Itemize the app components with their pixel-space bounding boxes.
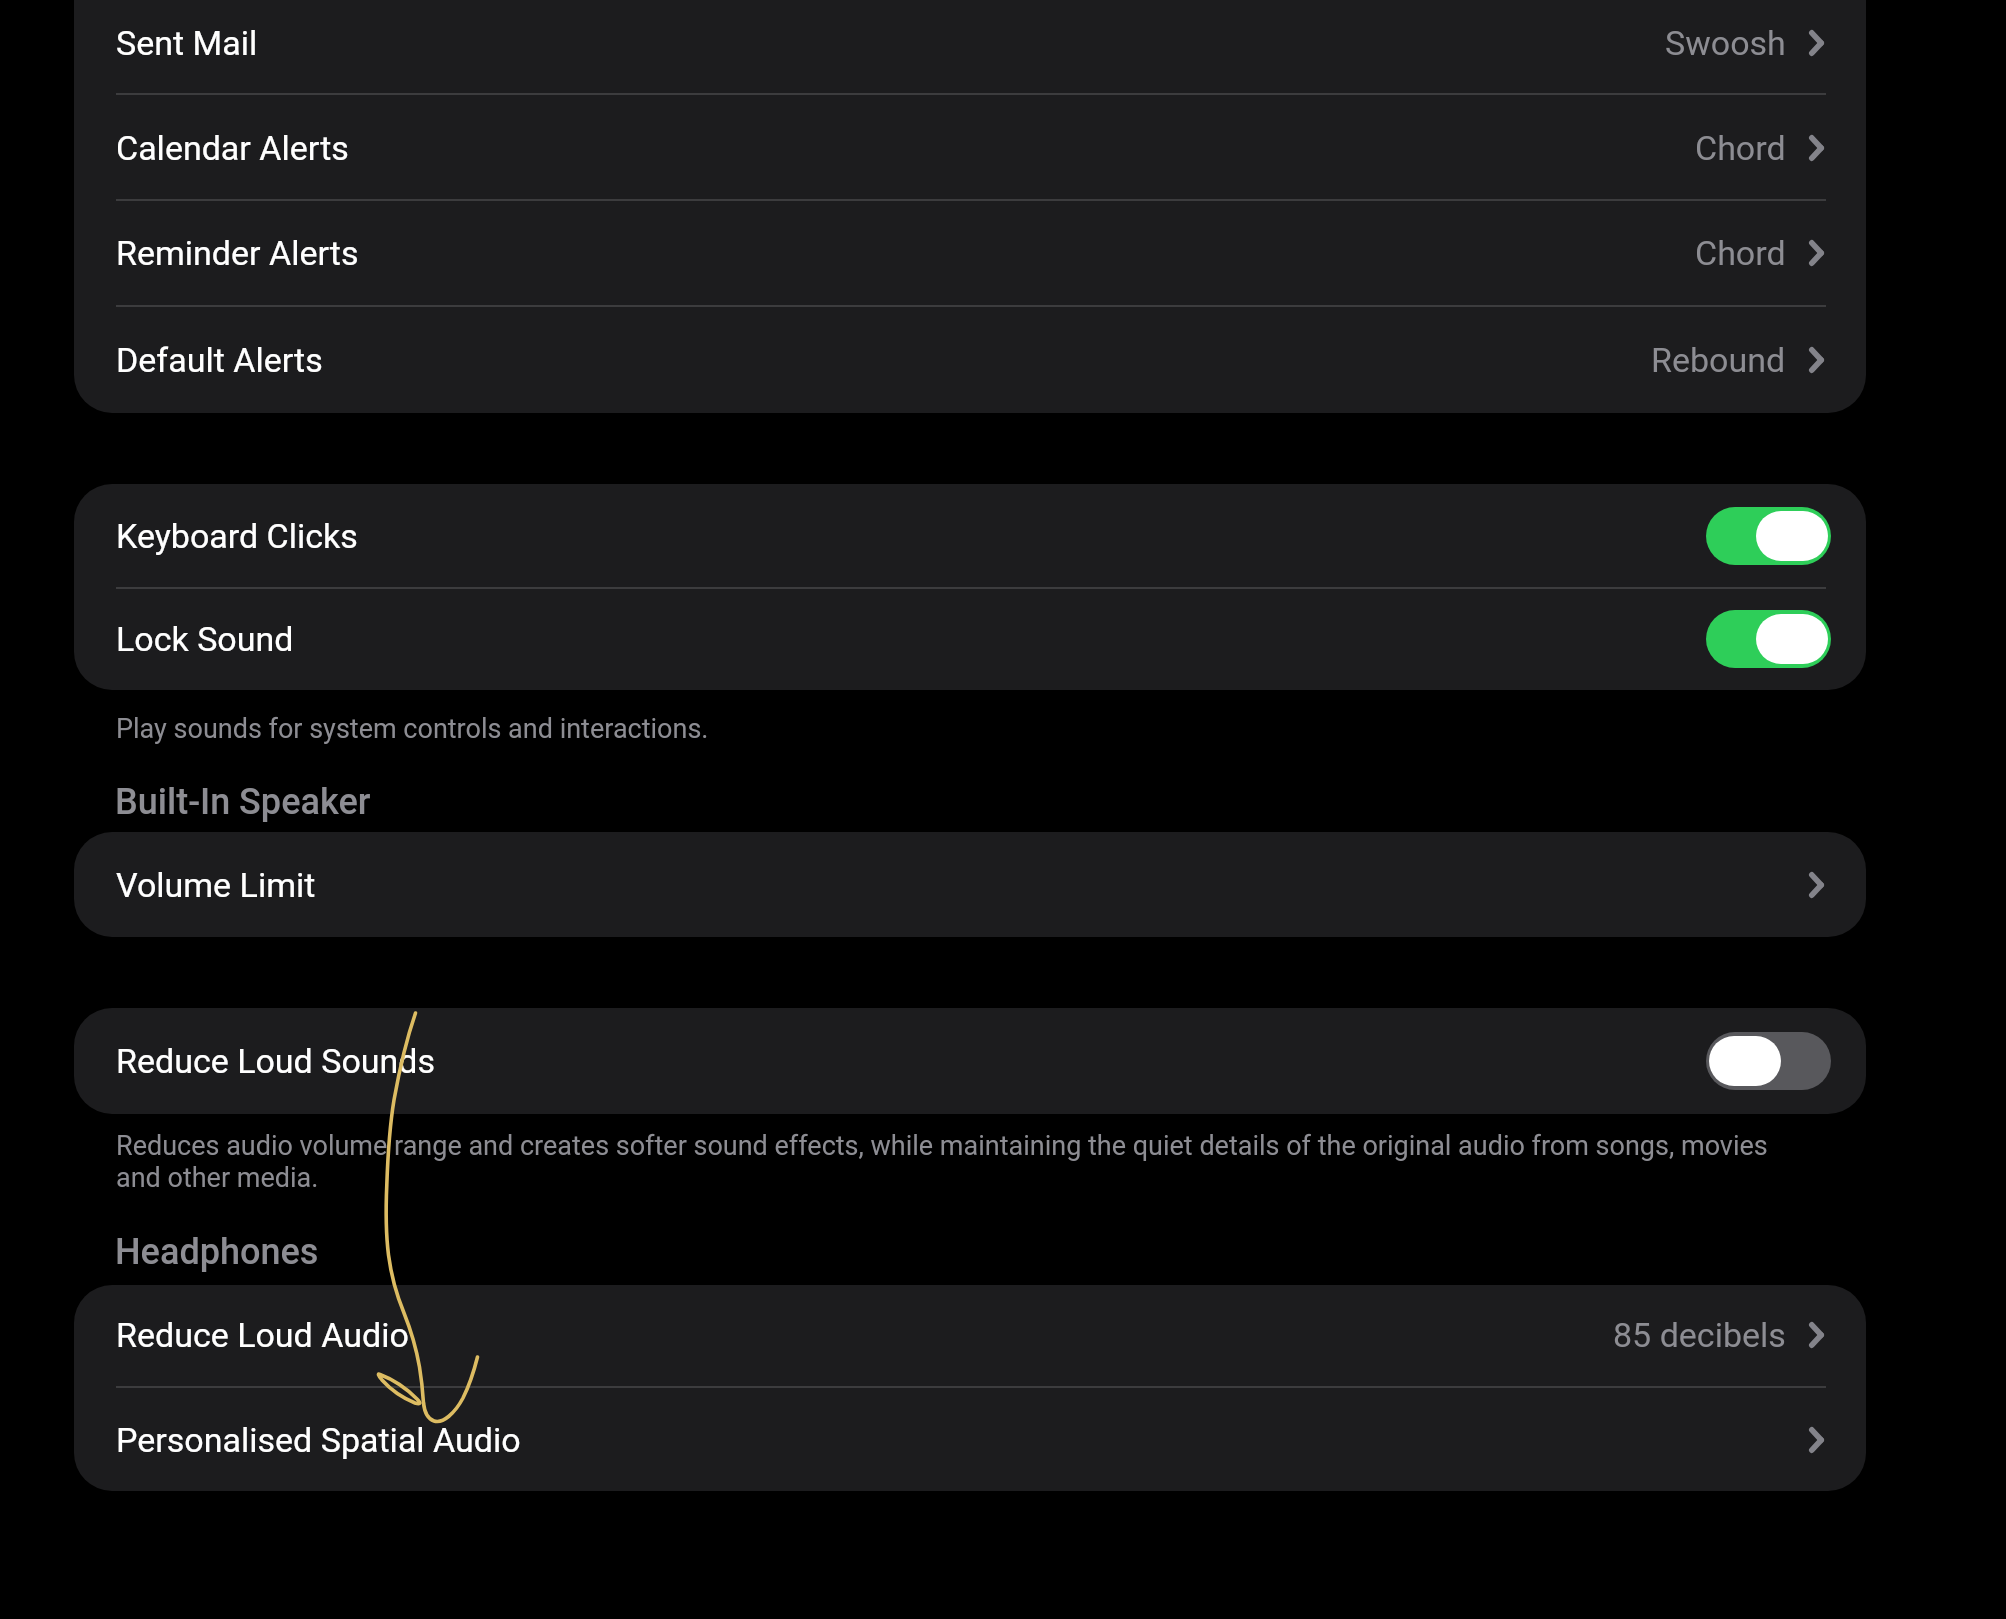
- staticText: Chord: [1695, 128, 1786, 168]
- staticText: Lock Sound: [116, 619, 294, 659]
- staticText: Play sounds for system controls and inte…: [116, 713, 900, 745]
- button[interactable]: Default Alerts: [74, 306, 1866, 413]
- button[interactable]: Personalised Spatial Audio: [74, 1389, 1866, 1491]
- other: Open: [1809, 240, 1824, 266]
- staticText: Sent Mail: [116, 23, 258, 63]
- button[interactable]: Sent Mail: [74, 0, 1866, 96]
- staticText: Calendar Alerts: [116, 128, 349, 168]
- button[interactable]: Switch, on: [1706, 507, 1831, 565]
- button[interactable]: Lock Sound: [74, 588, 1866, 690]
- staticText: Headphones: [115, 1231, 319, 1273]
- staticText: Personalised Spatial Audio: [116, 1420, 521, 1460]
- staticText: Reduce Loud Audio: [116, 1315, 409, 1355]
- staticText: 85 decibels: [1613, 1315, 1786, 1355]
- other: Open: [1809, 1427, 1824, 1453]
- staticText: Reduce Loud Sounds: [116, 1041, 436, 1081]
- other: Open: [1809, 872, 1824, 898]
- button[interactable]: Switch, off: [1706, 1032, 1831, 1090]
- staticText: Built-In Speaker: [115, 781, 371, 823]
- staticText: Default Alerts: [116, 340, 323, 380]
- staticText: Rebound: [1651, 340, 1786, 380]
- button[interactable]: Keyboard Clicks: [74, 484, 1866, 588]
- button[interactable]: Calendar Alerts: [74, 95, 1866, 201]
- button[interactable]: Switch, on: [1706, 610, 1831, 668]
- staticText: Chord: [1695, 233, 1786, 273]
- staticText: Volume Limit: [116, 865, 316, 905]
- other: Open: [1809, 30, 1824, 56]
- other: Open: [1809, 347, 1824, 373]
- staticText: Reminder Alerts: [116, 233, 359, 273]
- staticText: Swoosh: [1665, 23, 1786, 63]
- button[interactable]: Volume Limit: [74, 832, 1866, 937]
- staticText: Reduces audio volume range and creates s…: [116, 1130, 1800, 1194]
- button[interactable]: Reminder Alerts: [74, 200, 1866, 306]
- button[interactable]: Reduce Loud Audio: [74, 1285, 1866, 1385]
- other: Open: [1809, 135, 1824, 161]
- staticText: Keyboard Clicks: [116, 516, 358, 556]
- other: Open: [1809, 1322, 1824, 1348]
- button[interactable]: Reduce Loud Sounds: [74, 1008, 1866, 1114]
